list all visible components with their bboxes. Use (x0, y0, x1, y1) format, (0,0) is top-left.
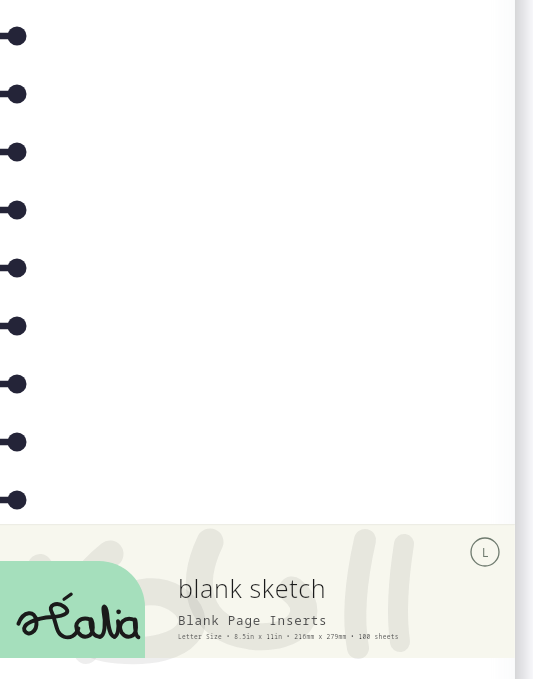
button[interactable]: blank sketch (178, 571, 399, 640)
staticText: Letter Size • 8.5in x 11in • 216mm x 279… (178, 632, 399, 640)
button[interactable]: Size L (470, 537, 500, 567)
staticText: blank sketch (178, 571, 327, 605)
staticText: Blank Page Inserts (178, 612, 328, 629)
button[interactable] (0, 561, 145, 658)
staticText: L (482, 544, 489, 560)
